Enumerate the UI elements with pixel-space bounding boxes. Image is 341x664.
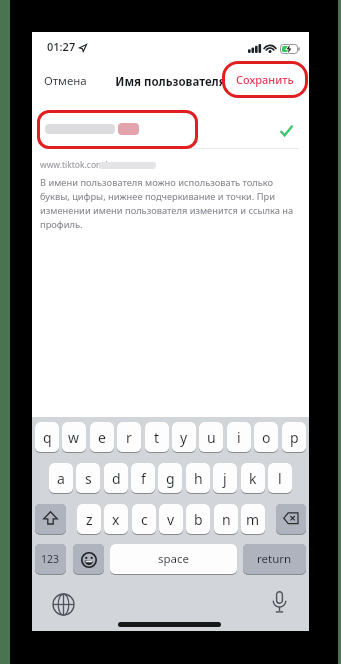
button[interactable] <box>276 504 306 535</box>
staticText: m <box>246 510 260 529</box>
button[interactable]: return <box>243 544 306 575</box>
button[interactable]: w <box>62 422 86 453</box>
staticText: k <box>249 469 257 488</box>
staticText: v <box>167 510 175 529</box>
button[interactable]: v <box>159 504 183 535</box>
staticText: n <box>222 510 231 529</box>
button[interactable]: l <box>268 463 292 494</box>
button[interactable] <box>272 591 287 614</box>
staticText: Сохранить <box>236 72 294 87</box>
button[interactable] <box>37 110 198 149</box>
staticText: space <box>158 551 190 567</box>
staticText: 123 <box>41 552 60 566</box>
staticText: f <box>141 469 146 488</box>
button[interactable]: p <box>282 422 306 453</box>
staticText: d <box>112 469 121 488</box>
staticText: h <box>194 469 203 488</box>
button[interactable]: j <box>213 463 237 494</box>
button[interactable]: space <box>110 544 237 575</box>
staticText: y <box>180 428 188 447</box>
button[interactable]: x <box>104 504 128 535</box>
button[interactable]: q <box>35 422 59 453</box>
staticText: j <box>223 469 227 488</box>
button[interactable]: Сохранить <box>222 61 308 98</box>
button[interactable]: c <box>132 504 156 535</box>
button[interactable]: b <box>186 504 210 535</box>
button[interactable]: a <box>49 463 73 494</box>
button[interactable]: d <box>104 463 128 494</box>
staticText: p <box>290 428 299 447</box>
staticText: r <box>126 428 132 447</box>
button[interactable]: y <box>172 422 196 453</box>
button[interactable]: z <box>77 504 101 535</box>
staticText: Отмена <box>44 73 87 89</box>
button[interactable]: t <box>145 422 169 453</box>
staticText: z <box>86 510 93 529</box>
staticText: w <box>68 428 80 447</box>
staticText: q <box>43 428 52 447</box>
button[interactable]: i <box>227 422 251 453</box>
button[interactable]: n <box>214 504 238 535</box>
staticText: u <box>207 428 216 447</box>
button[interactable] <box>73 544 104 575</box>
staticText: e <box>98 428 106 447</box>
button[interactable] <box>52 593 75 616</box>
staticText: i <box>237 428 241 447</box>
staticText: www.tiktok.com/ <box>40 159 108 171</box>
staticText: a <box>57 469 65 488</box>
button[interactable]: k <box>241 463 265 494</box>
staticText: s <box>85 469 92 488</box>
button[interactable]: h <box>186 463 210 494</box>
button[interactable]: m <box>241 504 265 535</box>
button[interactable] <box>35 504 66 535</box>
staticText: В имени пользователя можно использовать … <box>40 176 294 231</box>
staticText: 01:27 <box>47 39 76 54</box>
button[interactable]: o <box>254 422 278 453</box>
staticText: Имя пользователя <box>32 74 309 90</box>
button[interactable]: s <box>76 463 100 494</box>
button[interactable]: Отмена <box>32 68 102 94</box>
staticText: return <box>257 551 292 567</box>
button[interactable]: r <box>117 422 141 453</box>
staticText: b <box>194 510 203 529</box>
staticText: t <box>154 428 160 447</box>
staticText: g <box>166 469 175 488</box>
button[interactable]: g <box>158 463 182 494</box>
button[interactable]: f <box>131 463 155 494</box>
staticText: o <box>262 428 271 447</box>
button[interactable]: 123 <box>35 544 66 575</box>
button[interactable]: e <box>90 422 114 453</box>
button[interactable]: u <box>199 422 223 453</box>
staticText: x <box>112 510 120 529</box>
staticText: c <box>141 510 148 529</box>
staticText: l <box>278 469 282 488</box>
